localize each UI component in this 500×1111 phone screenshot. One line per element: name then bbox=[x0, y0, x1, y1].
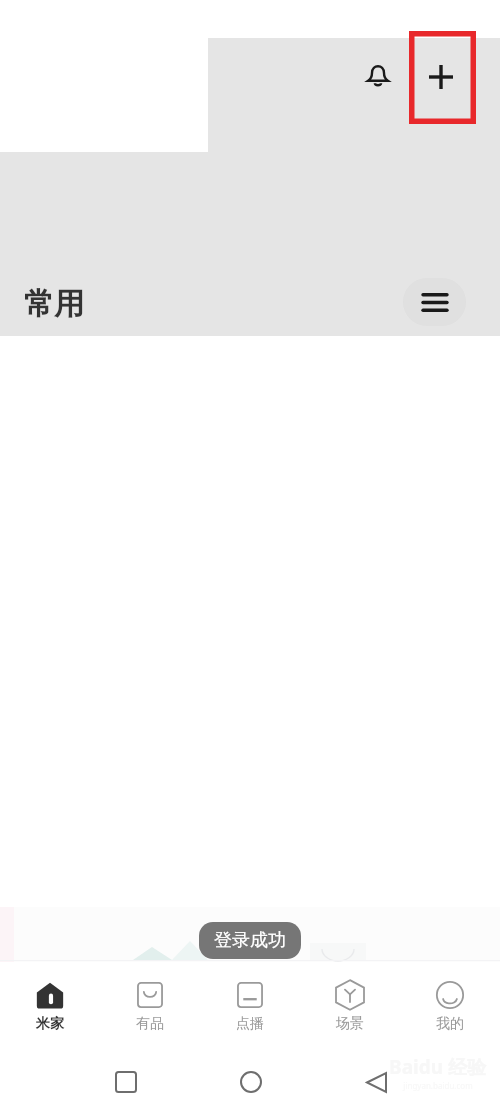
button[interactable]: Add device bbox=[409, 31, 476, 124]
button[interactable]: 点播 bbox=[200, 981, 300, 1033]
button[interactable]: 场景 bbox=[300, 981, 400, 1033]
staticText: 常用 bbox=[24, 285, 84, 323]
staticText: 点播 bbox=[236, 1015, 264, 1033]
staticText: 场景 bbox=[336, 1015, 364, 1033]
button[interactable]: 我的 bbox=[400, 981, 500, 1033]
button[interactable]: Back bbox=[352, 1058, 400, 1106]
button[interactable]: Notifications bbox=[356, 52, 400, 96]
staticText: 有品 bbox=[136, 1015, 164, 1033]
staticText: 米家 bbox=[36, 1015, 64, 1033]
staticText: 我的 bbox=[436, 1015, 464, 1033]
button[interactable]: 米家 bbox=[0, 981, 100, 1033]
button[interactable]: Home bbox=[227, 1058, 275, 1106]
staticText: 登录成功 bbox=[214, 929, 286, 952]
staticText: Baidu 经验 bbox=[389, 1054, 486, 1080]
button[interactable]: 有品 bbox=[100, 981, 200, 1033]
button[interactable]: Menu bbox=[403, 278, 466, 326]
button[interactable]: Recent apps bbox=[102, 1058, 150, 1106]
